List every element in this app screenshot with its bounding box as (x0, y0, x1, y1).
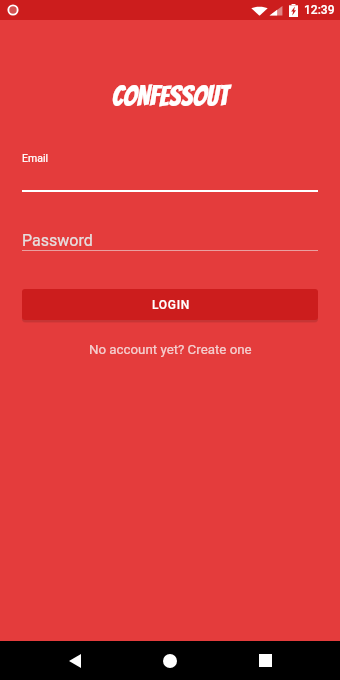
button[interactable]: Recent apps (245, 641, 285, 680)
button[interactable]: No account yet? Create one (0, 336, 340, 364)
button[interactable]: Email (22, 140, 318, 192)
staticText: No account yet? Create one (89, 342, 252, 358)
staticText: LOGIN (152, 298, 190, 312)
staticText: 12:39 (304, 3, 335, 17)
button[interactable]: Home (150, 641, 190, 680)
button[interactable]: Back (55, 641, 95, 680)
button[interactable]: LOGIN (22, 289, 318, 320)
staticText: Email (22, 152, 48, 164)
staticText: Password (22, 231, 93, 250)
button[interactable]: Password (22, 220, 318, 251)
staticText: CONFESSOUT (0, 81, 340, 111)
